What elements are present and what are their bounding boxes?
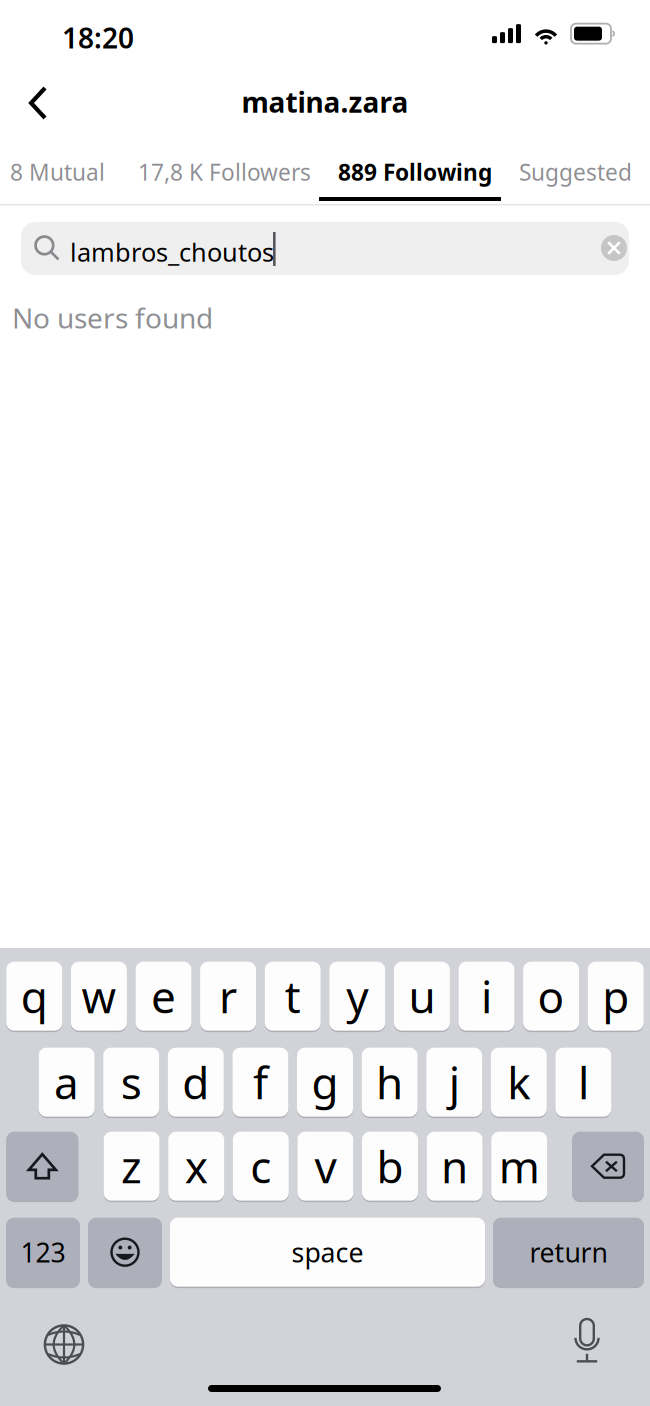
- button[interactable]: m: [491, 1131, 547, 1201]
- button[interactable]: return: [493, 1217, 644, 1287]
- button[interactable]: Dictate: [570, 1319, 604, 1366]
- button[interactable]: 17,8 K Followers: [138, 146, 311, 198]
- button[interactable]: Delete: [572, 1131, 644, 1201]
- staticText: No users found: [12, 299, 213, 336]
- button[interactable]: b: [362, 1131, 418, 1201]
- button[interactable]: space: [170, 1217, 485, 1287]
- staticText: r: [219, 967, 237, 1025]
- button[interactable]: Suggested: [519, 146, 632, 198]
- staticText: v: [314, 1137, 336, 1195]
- staticText: 123: [20, 1234, 65, 1270]
- staticText: y: [346, 967, 368, 1025]
- button[interactable]: Numbers: [6, 1217, 80, 1287]
- staticText: f: [253, 1053, 268, 1111]
- staticText: q: [21, 967, 48, 1025]
- button[interactable]: 889 Following: [338, 146, 492, 198]
- staticText: Suggested: [519, 157, 632, 187]
- staticText: 889 Following: [338, 157, 492, 187]
- button[interactable]: l: [555, 1047, 611, 1117]
- button[interactable]: a: [39, 1047, 95, 1117]
- staticText: h: [376, 1053, 403, 1111]
- staticText: x: [185, 1137, 208, 1195]
- button[interactable]: r: [200, 961, 256, 1031]
- button[interactable]: Back: [9, 74, 65, 132]
- button[interactable]: t: [265, 961, 321, 1031]
- staticText: j: [449, 1053, 460, 1111]
- staticText: d: [182, 1053, 209, 1111]
- button[interactable]: w: [71, 961, 127, 1031]
- staticText: 8 Mutual: [10, 157, 105, 187]
- button[interactable]: Next keyboard: [43, 1324, 84, 1365]
- staticText: g: [311, 1053, 338, 1111]
- button[interactable]: f: [232, 1047, 288, 1117]
- button[interactable]: s: [103, 1047, 159, 1117]
- button[interactable]: Shift: [6, 1131, 78, 1201]
- button[interactable]: n: [427, 1131, 483, 1201]
- button[interactable]: Emoji: [88, 1217, 162, 1287]
- staticText: p: [602, 967, 629, 1025]
- staticText: a: [54, 1053, 79, 1111]
- staticText: space: [291, 1234, 363, 1270]
- button[interactable]: z: [104, 1131, 160, 1201]
- button[interactable]: u: [394, 961, 450, 1031]
- staticText: return: [529, 1234, 607, 1270]
- staticText: k: [507, 1053, 530, 1111]
- staticText: b: [376, 1137, 403, 1195]
- staticText: 17,8 K Followers: [138, 157, 311, 187]
- button[interactable]: x: [168, 1131, 224, 1201]
- staticText: n: [441, 1137, 468, 1195]
- staticText: s: [121, 1053, 142, 1111]
- staticText: l: [578, 1053, 589, 1111]
- button[interactable]: 8 Mutual: [10, 146, 105, 198]
- button[interactable]: e: [135, 961, 191, 1031]
- staticText: e: [151, 967, 176, 1025]
- button[interactable]: d: [168, 1047, 224, 1117]
- button[interactable]: q: [6, 961, 62, 1031]
- button[interactable]: y: [329, 961, 385, 1031]
- button[interactable]: o: [523, 961, 579, 1031]
- button[interactable]: v: [297, 1131, 353, 1201]
- button[interactable]: h: [362, 1047, 418, 1117]
- staticText: i: [481, 967, 492, 1025]
- staticText: t: [285, 967, 301, 1025]
- button[interactable]: lambros_choutos: [21, 222, 629, 275]
- staticText: z: [121, 1137, 142, 1195]
- button[interactable]: k: [491, 1047, 547, 1117]
- staticText: o: [538, 967, 565, 1025]
- button[interactable]: p: [588, 961, 644, 1031]
- button[interactable]: i: [458, 961, 514, 1031]
- staticText: 18:20: [62, 19, 134, 56]
- button[interactable]: c: [233, 1131, 289, 1201]
- button[interactable]: j: [426, 1047, 482, 1117]
- staticText: u: [408, 967, 435, 1025]
- staticText: lambros_choutos: [70, 235, 274, 269]
- staticText: w: [81, 967, 116, 1025]
- button[interactable]: matina.zara: [215, 80, 435, 124]
- button[interactable]: g: [297, 1047, 353, 1117]
- staticText: m: [499, 1137, 540, 1195]
- staticText: c: [250, 1137, 271, 1195]
- staticText: matina.zara: [241, 83, 408, 121]
